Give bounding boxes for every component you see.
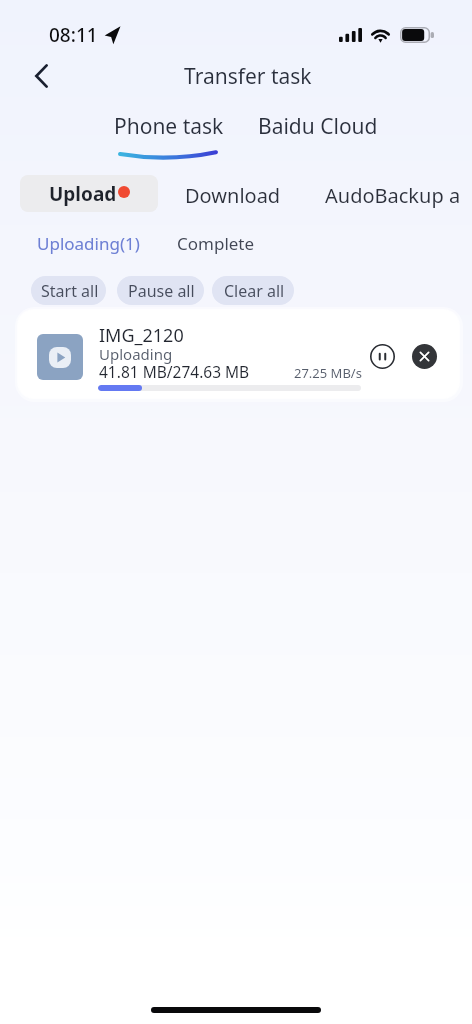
staticText: Uploading(1) (37, 232, 140, 255)
button[interactable]: Cancel (412, 344, 437, 369)
staticText: 27.25 MB/s (294, 364, 362, 382)
button[interactable]: Download (177, 176, 289, 215)
button[interactable]: Phone task (110, 109, 228, 144)
staticText: Phone task (114, 112, 224, 141)
staticText: Clear all (224, 280, 285, 302)
staticText: Download (185, 182, 281, 209)
staticText: IMG_2120 (99, 323, 184, 348)
button[interactable]: Uploading(1) (31, 227, 146, 260)
staticText: Start all (41, 280, 99, 302)
staticText: Pause all (128, 280, 195, 302)
staticText: Complete (177, 232, 255, 255)
button[interactable]: IMG_2120 (18, 310, 459, 398)
staticText: Upload (49, 181, 117, 207)
staticText: 08:11 (49, 22, 98, 48)
button[interactable]: Upload (20, 175, 158, 212)
staticText: Transfer task (184, 62, 312, 91)
staticText: 41.81 MB/274.63 MB (99, 361, 250, 382)
button[interactable]: Start all (31, 276, 106, 305)
staticText: AudoBackup a (325, 182, 461, 209)
button[interactable]: Pause all (117, 276, 204, 305)
staticText: Baidu Cloud (258, 112, 378, 141)
staticText: Uploading (99, 344, 173, 364)
button[interactable]: Back (21, 56, 61, 96)
button[interactable]: Pause (370, 344, 395, 369)
button[interactable]: Clear all (212, 276, 294, 305)
button[interactable]: AudoBackup a (317, 176, 469, 215)
button[interactable]: Baidu Cloud (254, 109, 382, 144)
button[interactable]: Complete (171, 227, 261, 260)
